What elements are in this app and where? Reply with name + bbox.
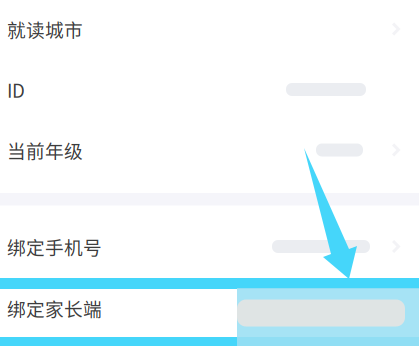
staticText: 当前年级 [7, 136, 83, 163]
button[interactable]: 绑定手机号 [0, 205, 419, 287]
button[interactable]: 绑定家长端 [0, 287, 419, 328]
staticText: 绑定手机号 [7, 233, 102, 260]
staticText: 绑定家长端 [7, 294, 102, 321]
staticText: 就读城市 [7, 15, 83, 42]
button[interactable]: 就读城市 [0, 0, 419, 59]
button[interactable]: 当前年级 [0, 119, 419, 180]
button[interactable]: ID [0, 59, 419, 119]
staticText: ID [7, 76, 25, 103]
